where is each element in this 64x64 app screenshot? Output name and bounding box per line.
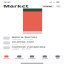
staticText: Market — [20, 55, 64, 64]
staticText: 9:41 — [24, 13, 64, 41]
